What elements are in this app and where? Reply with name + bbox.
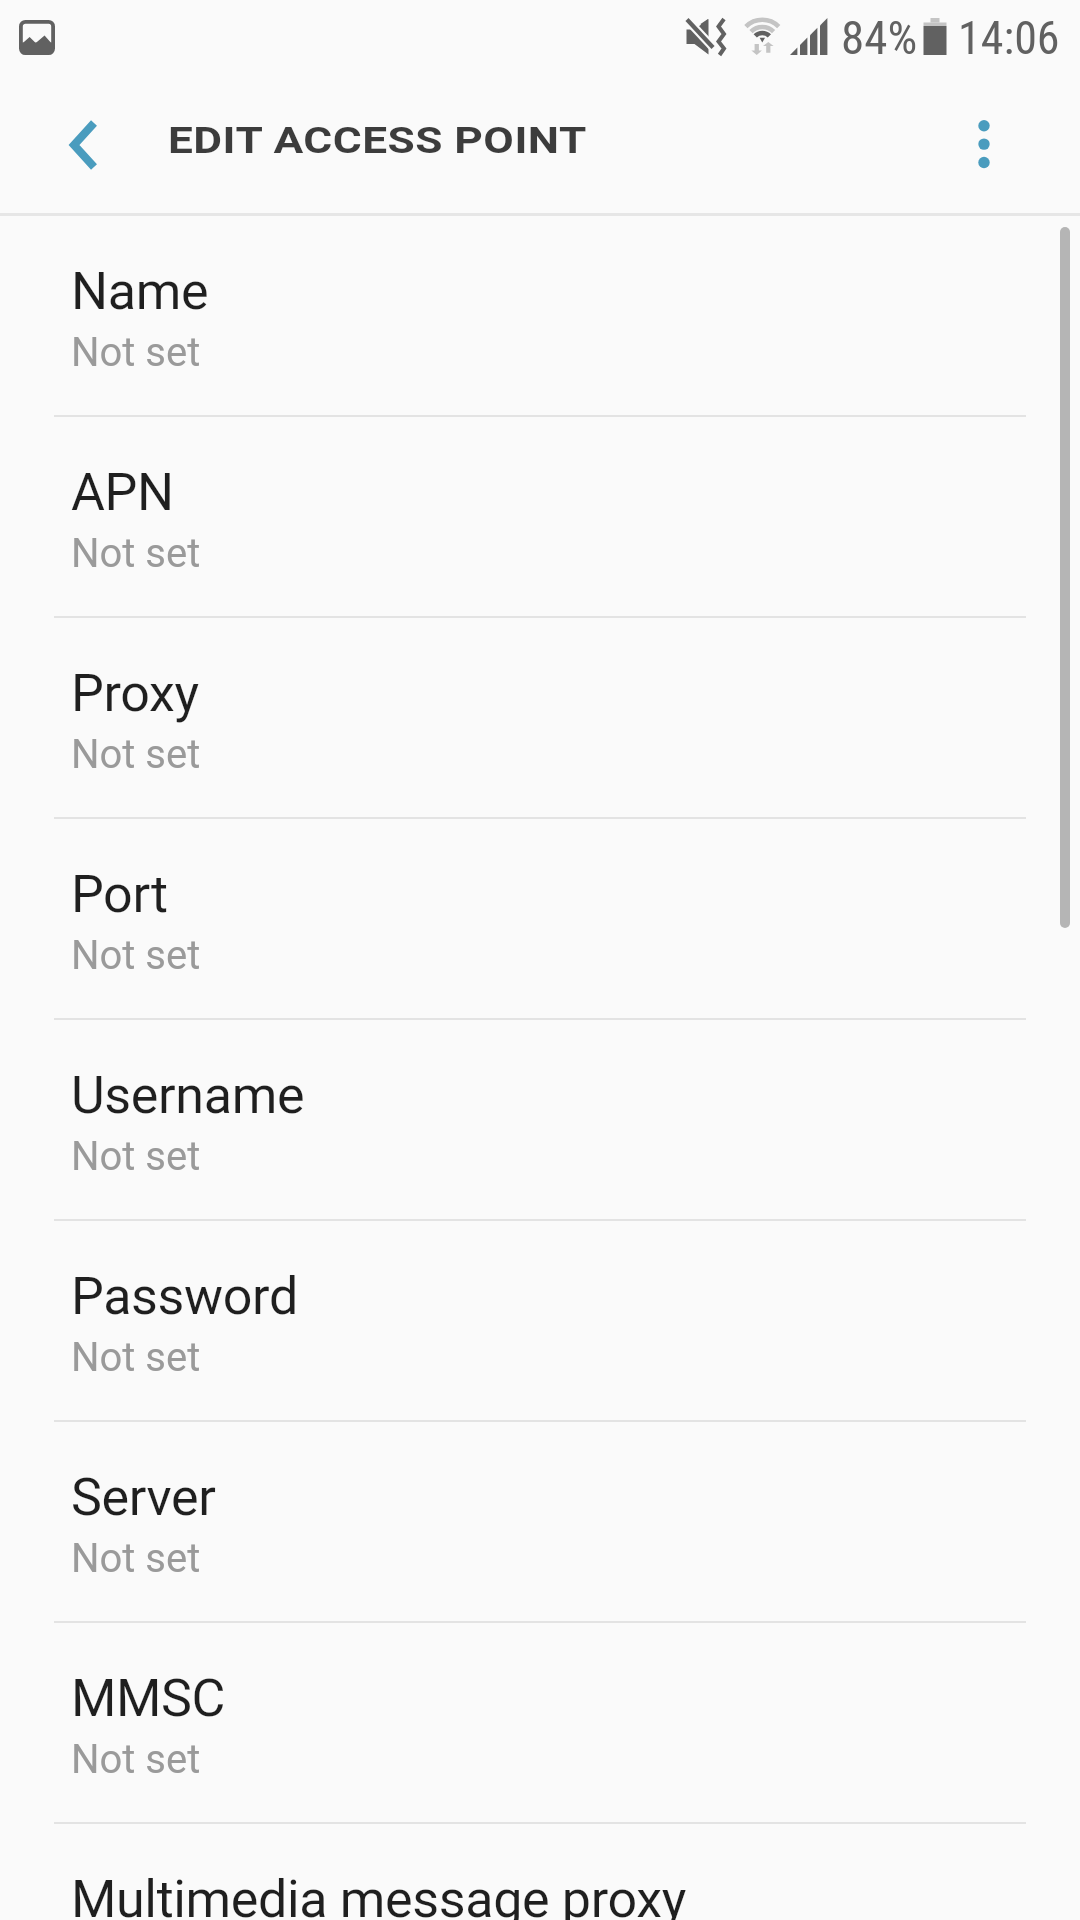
button[interactable]: Name [0, 212, 1080, 413]
button[interactable]: Multimedia message proxy [0, 1820, 1080, 1920]
staticText: EDIT ACCESS POINT [168, 118, 587, 162]
button[interactable]: More options [924, 82, 1044, 210]
button[interactable]: APN [0, 413, 1080, 614]
button[interactable]: Password [0, 1217, 1080, 1418]
staticText: Password [71, 1266, 298, 1327]
staticText: APN [71, 462, 174, 523]
staticText: Server [71, 1467, 216, 1528]
staticText: Not set [71, 932, 201, 979]
staticText: MMSC [71, 1668, 226, 1729]
staticText: Not set [71, 530, 201, 577]
button[interactable]: MMSC [0, 1619, 1080, 1820]
staticText: Username [71, 1065, 305, 1126]
button[interactable]: Server [0, 1418, 1080, 1619]
staticText: Not set [71, 329, 201, 376]
staticText: Not set [71, 731, 201, 778]
button[interactable]: Username [0, 1016, 1080, 1217]
staticText: Not set [71, 1133, 201, 1180]
staticText: 14:06 [958, 11, 1060, 65]
staticText: Proxy [71, 663, 199, 724]
staticText: Not set [71, 1736, 201, 1783]
staticText: 84% [841, 10, 918, 65]
staticText: Name [71, 261, 209, 322]
staticText: Not set [71, 1334, 201, 1381]
staticText: Port [71, 864, 168, 925]
staticText: Not set [71, 1535, 201, 1582]
button[interactable]: Navigate up [20, 82, 144, 210]
button[interactable]: Port [0, 815, 1080, 1016]
staticText: Multimedia message proxy [71, 1869, 686, 1920]
button[interactable]: Proxy [0, 614, 1080, 815]
